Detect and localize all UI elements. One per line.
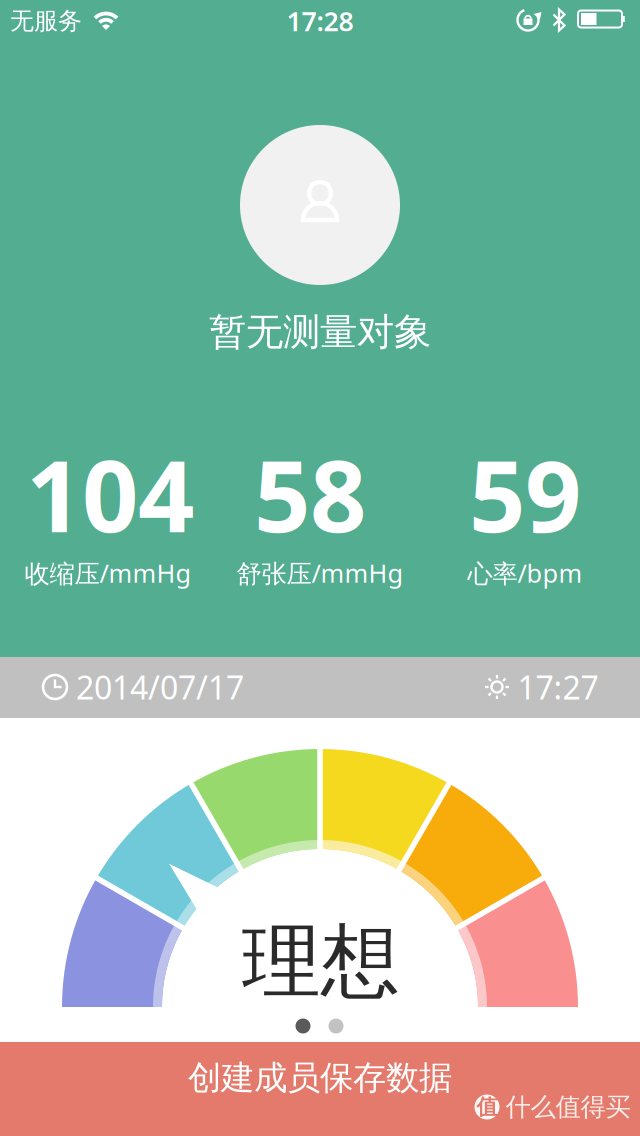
staticText: 理想 (242, 914, 400, 1010)
staticText: 2014/07/17 (76, 666, 244, 708)
staticText: 舒张压/mmHg (236, 556, 403, 590)
staticText: 17:27 (517, 666, 598, 708)
button[interactable] (0, 0, 640, 1136)
staticText: 58 (254, 428, 366, 559)
staticText: 心率/bpm (467, 556, 582, 590)
staticText: 59 (469, 428, 581, 559)
button[interactable]: 创建成员保存数据 (0, 1042, 640, 1136)
staticText: 17:28 (286, 3, 353, 39)
staticText: 暂无测量对象 (209, 309, 431, 355)
staticText: 什么值得买 (505, 1091, 630, 1122)
staticText: 值 (476, 1094, 497, 1120)
staticText: 无服务 (10, 6, 82, 36)
staticText: 创建成员保存数据 (188, 1057, 452, 1098)
staticText: 收缩压/mmHg (24, 556, 191, 590)
staticText: 104 (26, 428, 194, 559)
